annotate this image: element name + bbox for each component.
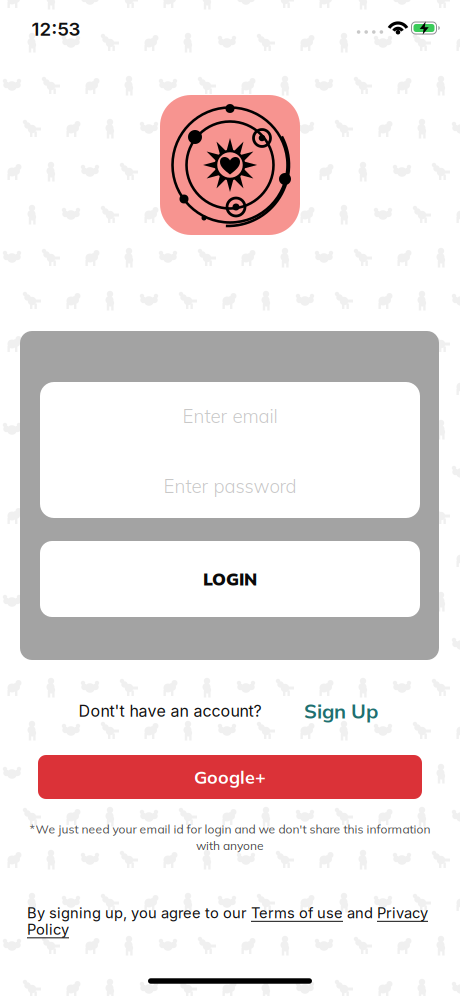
staticText: Dont't have an account? <box>78 702 261 720</box>
button[interactable]: Privacy <box>377 904 428 922</box>
staticText: Google+ <box>194 766 266 788</box>
staticText: Sign Up <box>304 698 378 724</box>
button[interactable]: Enter email <box>40 382 420 450</box>
staticText: Terms of use <box>251 904 343 922</box>
staticText: Enter email <box>182 404 277 428</box>
button[interactable]: Policy <box>27 921 69 938</box>
button[interactable]: LOGIN <box>40 541 420 617</box>
button[interactable]: Sign Up <box>304 698 378 724</box>
staticText: and <box>343 904 377 922</box>
button[interactable]: Google+ <box>38 755 422 799</box>
staticText: LOGIN <box>203 568 257 590</box>
staticText: Privacy <box>377 904 428 922</box>
staticText: 12:53 <box>31 18 80 40</box>
staticText: Enter password <box>163 474 296 498</box>
staticText: *We just need your email id for login an… <box>29 821 430 837</box>
button[interactable]: Terms of use <box>251 904 343 922</box>
staticText: with anyone <box>196 838 264 853</box>
staticText: By signing up, you agree to our <box>27 904 251 922</box>
button[interactable]: Enter password <box>40 452 420 520</box>
staticText: Policy <box>27 921 69 938</box>
